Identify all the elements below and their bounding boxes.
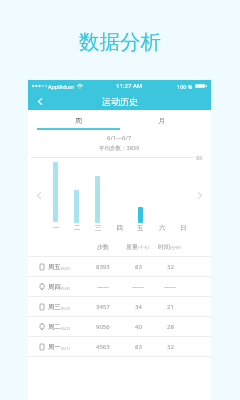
- staticText: 83: [135, 263, 142, 271]
- staticText: 83: [135, 343, 142, 351]
- staticText: 一: [53, 224, 60, 232]
- staticText: 周三: [48, 303, 61, 311]
- staticText: 100 %: [177, 83, 193, 90]
- staticText: Appilidum: [48, 83, 75, 90]
- staticText: 步数: [97, 243, 109, 251]
- staticText: ——: [97, 283, 110, 291]
- staticText: 4563: [96, 343, 110, 351]
- staticText: 日: [180, 224, 187, 232]
- staticText: 平均步数：3839: [99, 144, 140, 152]
- button[interactable]: 周三: [28, 297, 211, 316]
- staticText: 时间: [158, 243, 170, 251]
- staticText: 三: [95, 224, 102, 232]
- staticText: 8K: [196, 154, 203, 161]
- staticText: 11:27 AM: [116, 82, 143, 90]
- button[interactable]: 周一: [28, 337, 211, 356]
- staticText: 周: [75, 116, 82, 125]
- button[interactable]: Next week: [193, 188, 207, 202]
- staticText: 8393: [96, 263, 110, 271]
- staticText: ——: [132, 283, 145, 291]
- staticText: 32: [167, 263, 174, 271]
- staticText: (6/2): [61, 325, 71, 331]
- staticText: ——: [164, 283, 177, 291]
- staticText: 周一: [48, 343, 61, 351]
- staticText: 周二: [48, 323, 61, 331]
- button[interactable]: 周: [37, 110, 120, 130]
- staticText: 周四: [48, 283, 61, 291]
- button[interactable]: 月: [120, 110, 203, 130]
- staticText: 二: [74, 224, 81, 232]
- button[interactable]: 周二: [28, 317, 211, 336]
- staticText: 40: [135, 323, 142, 331]
- button[interactable]: 周五: [28, 257, 211, 276]
- staticText: 月: [158, 116, 165, 125]
- staticText: (千卡): [138, 245, 149, 251]
- staticText: 6/1—6/7: [107, 134, 132, 142]
- button[interactable]: Previous week: [32, 188, 46, 202]
- button[interactable]: 周四: [28, 277, 211, 296]
- staticText: 32: [167, 343, 174, 351]
- staticText: 28: [167, 323, 174, 331]
- staticText: 3457: [96, 303, 110, 311]
- staticText: 四: [116, 224, 123, 232]
- staticText: 数据分析: [79, 29, 161, 55]
- staticText: (6/3): [61, 305, 71, 311]
- staticText: 21: [167, 303, 174, 311]
- staticText: 9056: [96, 323, 110, 331]
- staticText: (6/1): [61, 345, 71, 351]
- staticText: (6/4): [61, 285, 71, 291]
- button[interactable]: Back: [32, 93, 48, 109]
- staticText: (分钟): [170, 245, 181, 251]
- staticText: 34: [135, 303, 142, 311]
- staticText: 五: [137, 224, 144, 232]
- staticText: 质量: [126, 243, 138, 251]
- staticText: 六: [159, 224, 166, 232]
- staticText: 运动历史: [102, 96, 138, 107]
- staticText: (6/5): [61, 265, 71, 271]
- staticText: 周五: [48, 263, 61, 271]
